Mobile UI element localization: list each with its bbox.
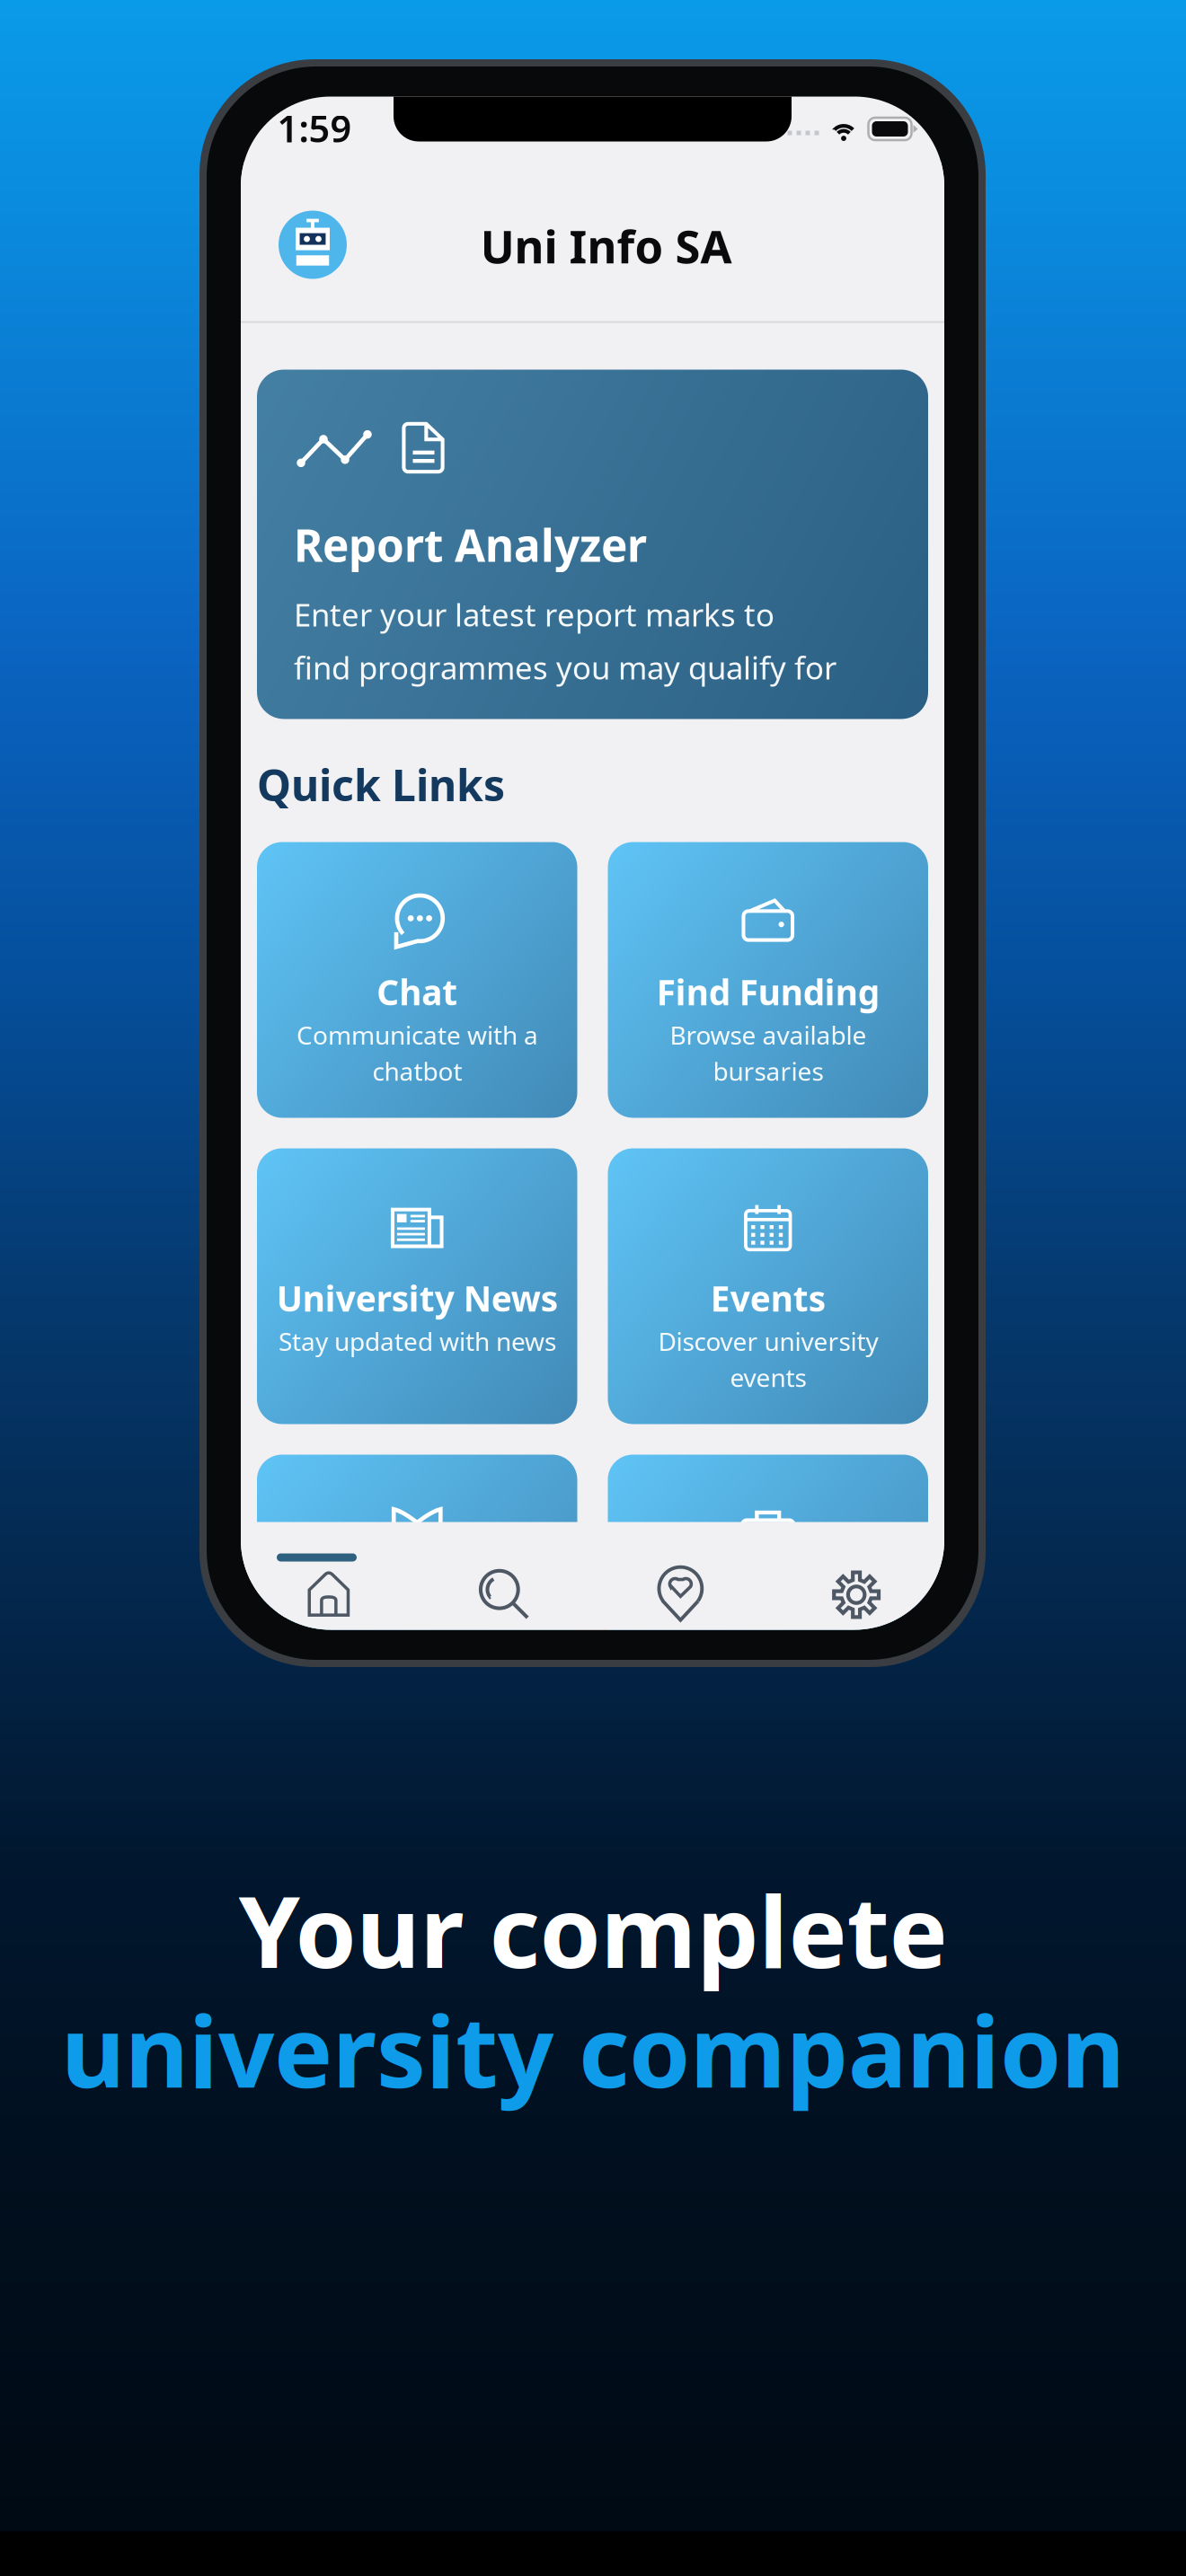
staticText: Events bbox=[711, 1275, 826, 1321]
staticText: Quick Links bbox=[257, 756, 505, 813]
staticText: Communicate with a chatbot bbox=[296, 1018, 538, 1088]
button[interactable]: Settings bbox=[768, 1541, 944, 1649]
button[interactable]: Events bbox=[608, 1148, 928, 1424]
staticText: 1:59 bbox=[277, 103, 352, 153]
staticText: Your complete bbox=[239, 1865, 947, 1995]
button[interactable]: University News bbox=[257, 1148, 577, 1424]
button[interactable]: Study Resources bbox=[257, 1455, 577, 1730]
button[interactable]: Careers bbox=[608, 1455, 928, 1730]
staticText: Uni Info SA bbox=[480, 215, 732, 276]
button[interactable]: Chat bbox=[257, 842, 577, 1118]
staticText: Find Funding bbox=[657, 969, 879, 1015]
button[interactable]: Search bbox=[417, 1541, 593, 1649]
staticText: Chat bbox=[377, 969, 458, 1015]
staticText: Report Analyzer bbox=[294, 515, 647, 574]
staticText: Guides and past papers bbox=[279, 1631, 555, 1664]
button[interactable]: Home bbox=[241, 1541, 417, 1649]
button[interactable]: Find Funding bbox=[608, 842, 928, 1118]
staticText: Browse available bursaries bbox=[670, 1018, 866, 1088]
staticText: Stay updated with news bbox=[278, 1324, 556, 1358]
button[interactable]: Profile bbox=[279, 211, 347, 279]
button[interactable]: Report Analyzer bbox=[257, 370, 928, 719]
staticText: Study Resources bbox=[276, 1581, 558, 1627]
staticText: find programmes you may qualify for bbox=[294, 647, 836, 688]
staticText: Enter your latest report marks to bbox=[294, 594, 774, 635]
staticText: university companion bbox=[61, 1984, 1125, 2115]
staticText: Explore graduate roles bbox=[635, 1631, 901, 1664]
button[interactable]: Saved bbox=[593, 1541, 768, 1649]
staticText: University News bbox=[277, 1275, 558, 1321]
staticText: Discover university events bbox=[658, 1324, 878, 1394]
staticText: Careers bbox=[702, 1581, 834, 1627]
